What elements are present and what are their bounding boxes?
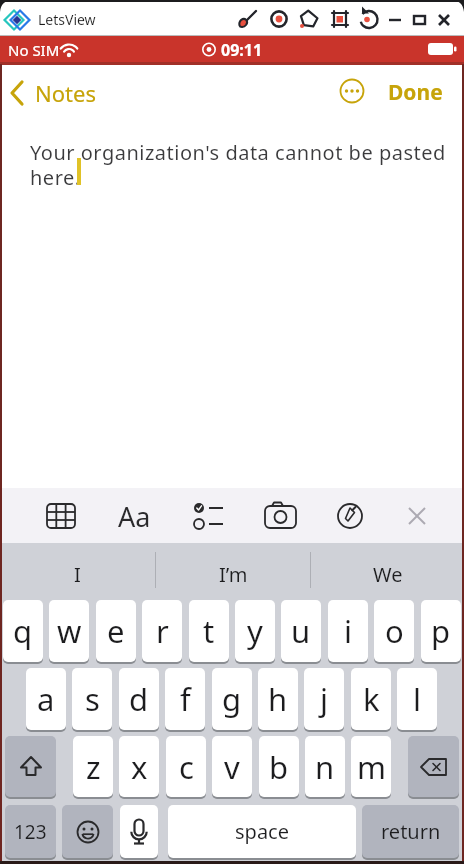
staticText: Done <box>388 78 443 107</box>
staticText: k <box>363 678 380 720</box>
button[interactable] <box>62 805 113 858</box>
button[interactable]: p <box>421 600 461 662</box>
staticText: space <box>235 818 289 845</box>
staticText: return <box>381 818 441 845</box>
staticText: c <box>179 746 194 788</box>
staticText: f <box>180 678 191 720</box>
staticText: j <box>320 678 328 720</box>
staticText: Aa <box>118 498 151 535</box>
button[interactable]: We <box>311 547 464 601</box>
staticText: h <box>268 678 288 720</box>
staticText: x <box>131 746 148 788</box>
staticText: No SIM <box>8 40 60 60</box>
staticText: n <box>315 746 335 788</box>
staticText: We <box>373 561 403 588</box>
button[interactable]: return <box>362 805 459 858</box>
button[interactable]: a <box>26 668 66 730</box>
staticText: z <box>86 746 101 788</box>
button[interactable]: I’m <box>156 547 310 601</box>
staticText: here. <box>30 164 81 191</box>
button[interactable]: n <box>305 736 345 797</box>
button[interactable]: x <box>119 736 159 797</box>
button[interactable]: f <box>165 668 205 730</box>
staticText: I’m <box>219 561 248 588</box>
button[interactable]: r <box>142 600 182 662</box>
button[interactable]: i <box>328 600 368 662</box>
staticText: d <box>129 678 149 720</box>
button[interactable]: o <box>374 600 414 662</box>
button[interactable]: l <box>397 668 437 730</box>
button[interactable]: k <box>351 668 391 730</box>
button[interactable]: Notes <box>8 78 96 108</box>
button[interactable]: b <box>259 736 299 797</box>
button[interactable]: u <box>281 600 321 662</box>
button[interactable]: y <box>235 600 275 662</box>
staticText: s <box>85 678 100 720</box>
button[interactable]: space <box>168 805 356 858</box>
staticText: v <box>224 746 240 788</box>
staticText: I <box>74 561 81 588</box>
button[interactable] <box>339 78 365 104</box>
staticText: y <box>247 610 263 652</box>
staticText: 123 <box>14 819 47 845</box>
staticText: q <box>13 610 33 652</box>
staticText: 09:11 <box>221 39 263 61</box>
staticText: r <box>156 610 169 652</box>
staticText: i <box>344 610 352 652</box>
button[interactable] <box>5 736 56 797</box>
staticText: l <box>413 678 421 720</box>
staticText: a <box>37 678 55 720</box>
button[interactable]: m <box>351 736 391 797</box>
staticText: e <box>107 610 125 652</box>
button[interactable]: v <box>212 736 252 797</box>
button[interactable]: I <box>0 547 155 601</box>
button[interactable]: Done <box>384 77 446 107</box>
button[interactable]: j <box>304 668 344 730</box>
button[interactable]: w <box>49 600 89 662</box>
staticText: Your organization's data cannot be paste… <box>30 139 446 166</box>
button[interactable]: t <box>189 600 229 662</box>
button[interactable]: h <box>258 668 298 730</box>
staticText: o <box>385 610 404 652</box>
button[interactable]: e <box>96 600 136 662</box>
button[interactable]: z <box>73 736 113 797</box>
staticText: w <box>57 610 82 652</box>
button[interactable]: q <box>3 600 43 662</box>
button[interactable]: g <box>212 668 252 730</box>
button[interactable] <box>120 805 158 858</box>
staticText: g <box>222 678 242 720</box>
staticText: Notes <box>35 78 96 108</box>
button[interactable]: c <box>166 736 206 797</box>
button[interactable]: s <box>72 668 112 730</box>
button[interactable]: d <box>119 668 159 730</box>
staticText: p <box>431 610 451 652</box>
button[interactable] <box>408 736 459 797</box>
staticText: u <box>291 610 311 652</box>
staticText: b <box>269 746 289 788</box>
staticText: LetsView <box>38 10 96 29</box>
button[interactable]: 123 <box>5 805 56 858</box>
staticText: t <box>203 610 215 652</box>
staticText: m <box>357 746 386 788</box>
